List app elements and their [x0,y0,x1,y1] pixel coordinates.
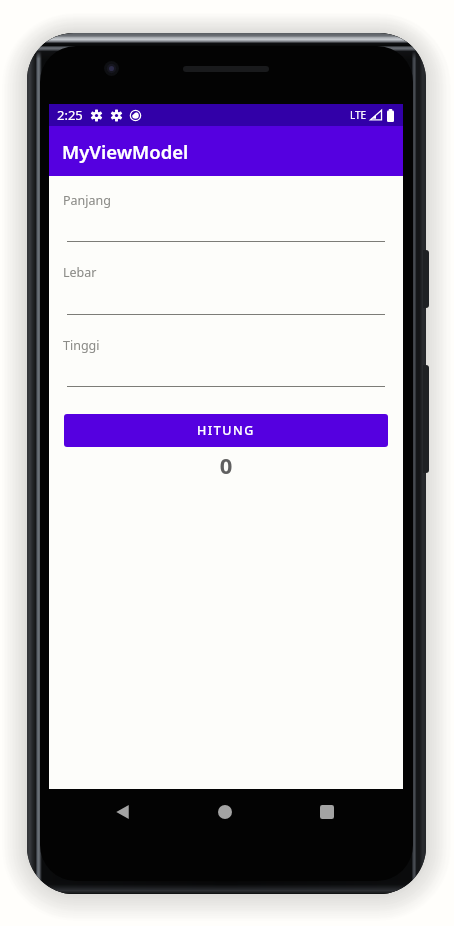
staticText: 2:25 [57,106,83,124]
staticText: MyViewModel [62,139,189,164]
staticText: Lebar [63,264,97,281]
button[interactable]: Recent apps [303,789,351,834]
staticText: Panjang [63,192,111,209]
staticText: LTE [350,108,367,122]
other: Volume button [423,365,429,473]
button[interactable]: Panjang [63,192,387,243]
button[interactable]: Home [201,789,249,834]
button[interactable]: Back [98,789,146,834]
button[interactable]: Tinggi [63,337,387,388]
button[interactable]: HITUNG [64,414,388,447]
staticText: 0 [49,450,403,480]
staticText: HITUNG [197,422,255,439]
staticText: Tinggi [63,337,100,354]
other: Power button [423,250,429,308]
button[interactable]: Lebar [63,264,387,315]
